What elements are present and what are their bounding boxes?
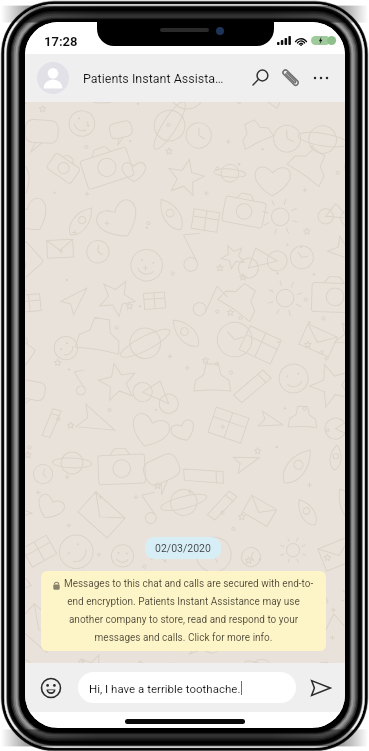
button[interactable]: Attach <box>273 60 309 96</box>
button[interactable]: Emoji <box>34 671 68 705</box>
button[interactable]: Search <box>243 60 279 96</box>
staticText: Messages to this chat and calls are secu… <box>52 578 315 644</box>
button[interactable]: Messages to this chat and calls are secu… <box>41 571 326 651</box>
staticText: 02/03/2020 <box>155 542 211 554</box>
button[interactable]: 02/03/2020 <box>145 537 221 559</box>
staticText: 17:28 <box>44 34 78 49</box>
staticText: Hi, I have a terrible toothache. <box>89 682 241 695</box>
button[interactable]: Hi, I have a terrible toothache. <box>78 672 296 703</box>
button[interactable]: Send <box>305 672 337 704</box>
button[interactable]: Contact profile photo <box>37 62 69 94</box>
button[interactable]: More options <box>305 62 337 94</box>
staticText: Patients Instant Assista… <box>83 71 224 86</box>
